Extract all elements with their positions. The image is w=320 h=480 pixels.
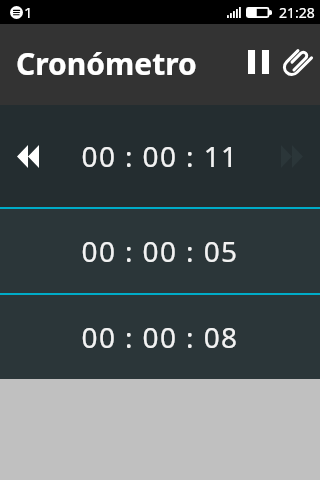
button[interactable]: 00 : 00 : 05 (0, 209, 320, 293)
staticText: 21:28 (279, 3, 315, 22)
staticText: 00 : 00 : 11 (0, 137, 320, 175)
button[interactable]: Attach (276, 37, 318, 93)
staticText: 00 : 00 : 05 (81, 232, 239, 270)
button[interactable]: 00 : 00 : 08 (0, 295, 320, 379)
staticText: 00 : 00 : 08 (81, 318, 239, 356)
staticText: 1 (24, 2, 33, 22)
button[interactable]: Pause (240, 37, 276, 93)
button[interactable]: Previous lap (0, 105, 56, 207)
button[interactable]: 00 : 00 : 11 (0, 105, 320, 207)
staticText: Cronómetro (16, 43, 197, 84)
